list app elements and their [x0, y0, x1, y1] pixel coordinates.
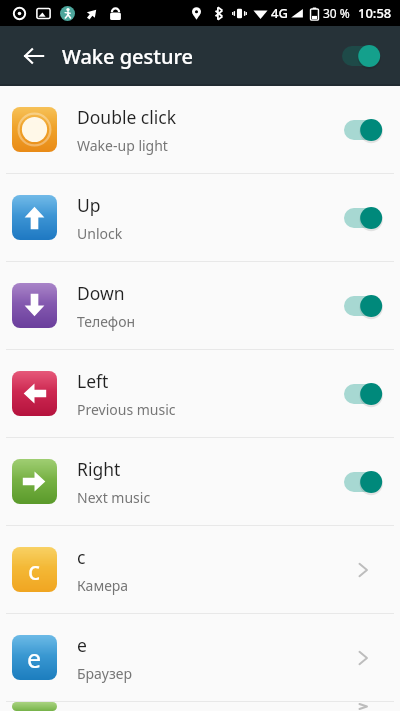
staticText: e: [77, 633, 87, 657]
staticText: Камера: [77, 576, 129, 595]
staticText: Unlock: [77, 224, 123, 243]
staticText: Down: [77, 281, 125, 305]
button[interactable]: Down: [0, 262, 400, 349]
button[interactable]: Toggle Right: [336, 458, 390, 506]
button[interactable]: Toggle Down: [336, 282, 390, 330]
button[interactable]: m: [0, 702, 400, 711]
staticText: Браузер: [77, 664, 132, 683]
button[interactable]: Open c: [336, 546, 390, 594]
button[interactable]: Double click: [0, 86, 400, 173]
staticText: c: [28, 553, 41, 587]
button[interactable]: Toggle Up: [336, 194, 390, 242]
staticText: Previous music: [77, 400, 176, 419]
staticText: Right: [77, 457, 121, 481]
button[interactable]: c: [0, 526, 400, 613]
button[interactable]: Left: [0, 350, 400, 437]
staticText: 30 %: [323, 5, 350, 21]
staticText: c: [77, 545, 86, 569]
staticText: m: [23, 702, 47, 711]
staticText: Next music: [77, 488, 151, 507]
button[interactable]: Up: [0, 174, 400, 261]
staticText: Up: [77, 193, 101, 217]
button[interactable]: e: [0, 614, 400, 701]
staticText: Left: [77, 369, 109, 393]
staticText: Телефон: [77, 312, 136, 331]
staticText: Double click: [77, 105, 177, 129]
staticText: e: [27, 641, 42, 675]
button[interactable]: Enable wake gestures: [336, 36, 386, 76]
button[interactable]: Right: [0, 438, 400, 525]
staticText: Wake-up light: [77, 136, 168, 155]
staticText: Wake gesture configur…: [62, 43, 199, 70]
staticText: 10:58: [358, 4, 392, 22]
button[interactable]: Back: [12, 34, 56, 78]
button[interactable]: Toggle Left: [336, 370, 390, 418]
button[interactable]: Open m: [336, 702, 390, 711]
button[interactable]: Open e: [336, 634, 390, 682]
button[interactable]: Toggle Double click: [336, 106, 390, 154]
staticText: 4G: [271, 4, 288, 22]
